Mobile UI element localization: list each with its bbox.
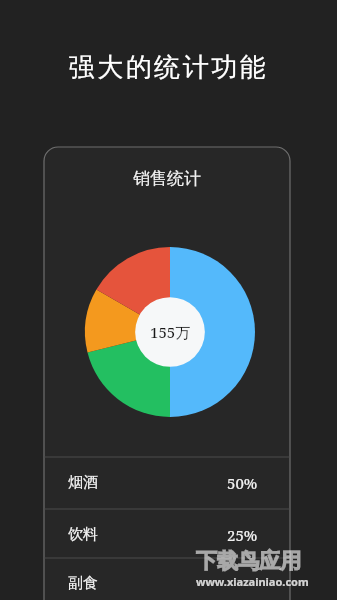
staticText: 副食 [68,574,98,593]
staticText: 烟酒 [68,473,98,492]
button[interactable]: 销售统计 [44,147,290,600]
staticText: 强大的统计功能 [0,51,337,84]
button[interactable]: 副食 [44,558,290,600]
staticText: 25% [227,525,258,545]
staticText: 下载鸟应用 [196,548,301,574]
button[interactable]: 烟酒 [44,457,290,508]
staticText: 销售统计 [44,168,290,189]
button[interactable]: 饮料 [44,509,290,560]
staticText: 155万 [150,322,191,342]
staticText: 50% [227,473,258,493]
staticText: 饮料 [68,525,98,544]
staticText: www.xiazainiao.com [196,574,309,589]
